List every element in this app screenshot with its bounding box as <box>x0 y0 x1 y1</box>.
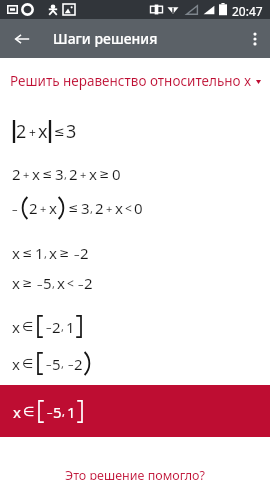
staticText: + <box>106 201 113 216</box>
staticText: 1 <box>67 402 76 422</box>
staticText: + <box>80 167 87 182</box>
staticText: , <box>61 319 64 334</box>
staticText: 5 <box>53 402 62 422</box>
button[interactable]: More options <box>240 19 270 58</box>
staticText: 0 <box>134 198 143 218</box>
staticText: 1 <box>66 317 75 337</box>
staticText: + <box>23 167 30 182</box>
staticText: ≤ <box>42 167 53 181</box>
staticText: 0 <box>112 164 121 184</box>
staticText: 2 <box>69 164 78 184</box>
staticText: x <box>12 354 20 374</box>
staticText: ≥ <box>59 246 70 260</box>
staticText: , <box>44 246 47 261</box>
staticText: – <box>46 319 52 334</box>
staticText: ≥ <box>22 276 33 290</box>
staticText: 2 <box>95 198 104 218</box>
staticText: 2 <box>84 273 93 293</box>
staticText: x <box>12 243 20 263</box>
staticText: x <box>32 164 40 184</box>
staticText: ∈ <box>22 319 34 334</box>
staticText: 2 <box>52 317 61 337</box>
staticText: – <box>46 356 52 371</box>
staticText: 2 <box>12 164 21 184</box>
staticText: , <box>61 356 64 371</box>
staticText: 5 <box>52 354 61 374</box>
staticText: 2 <box>16 119 27 144</box>
staticText: , <box>52 276 55 291</box>
staticText: x <box>49 243 57 263</box>
staticText: 3 <box>66 119 77 144</box>
staticText: x <box>115 198 123 218</box>
staticText: 20:47 <box>232 3 263 19</box>
staticText: 3 <box>55 164 64 184</box>
staticText: 5 <box>43 273 52 293</box>
button[interactable]: Back <box>0 19 44 58</box>
staticText: ∈ <box>22 356 34 371</box>
staticText: – <box>47 404 53 419</box>
staticText: + <box>29 124 36 140</box>
staticText: < <box>67 275 74 291</box>
staticText: x <box>57 273 65 293</box>
staticText: , <box>90 201 93 216</box>
staticText: ≤ <box>54 124 65 139</box>
staticText: – <box>78 276 84 291</box>
staticText: – <box>12 201 18 216</box>
staticText: x <box>89 164 97 184</box>
staticText: ≤ <box>22 246 33 260</box>
staticText: ∈ <box>23 404 35 419</box>
staticText: , <box>62 404 65 419</box>
staticText: – <box>37 276 43 291</box>
button[interactable]: Это решение помогло? <box>0 467 270 480</box>
staticText: x <box>12 317 20 337</box>
staticText: 2 <box>80 243 89 263</box>
staticText: + <box>40 201 47 216</box>
staticText: 1 <box>35 243 44 263</box>
staticText: Это решение помогло? <box>0 467 270 480</box>
staticText: < <box>125 200 132 216</box>
staticText: Решить неравенство относительно x <box>10 72 252 90</box>
staticText: 3 <box>81 198 90 218</box>
staticText: ≥ <box>99 167 110 181</box>
staticText: , <box>64 167 67 182</box>
staticText: x <box>38 119 48 144</box>
staticText: 2 <box>74 354 83 374</box>
button[interactable]: Решить неравенство относительно x <box>0 72 270 92</box>
staticText: ≤ <box>68 201 79 215</box>
staticText: x <box>13 402 21 422</box>
staticText: 2 <box>29 198 38 218</box>
staticText: – <box>68 356 74 371</box>
staticText: Шаги решения <box>53 29 158 48</box>
staticText: – <box>74 246 80 261</box>
staticText: x <box>49 198 57 218</box>
staticText: x <box>12 273 20 293</box>
